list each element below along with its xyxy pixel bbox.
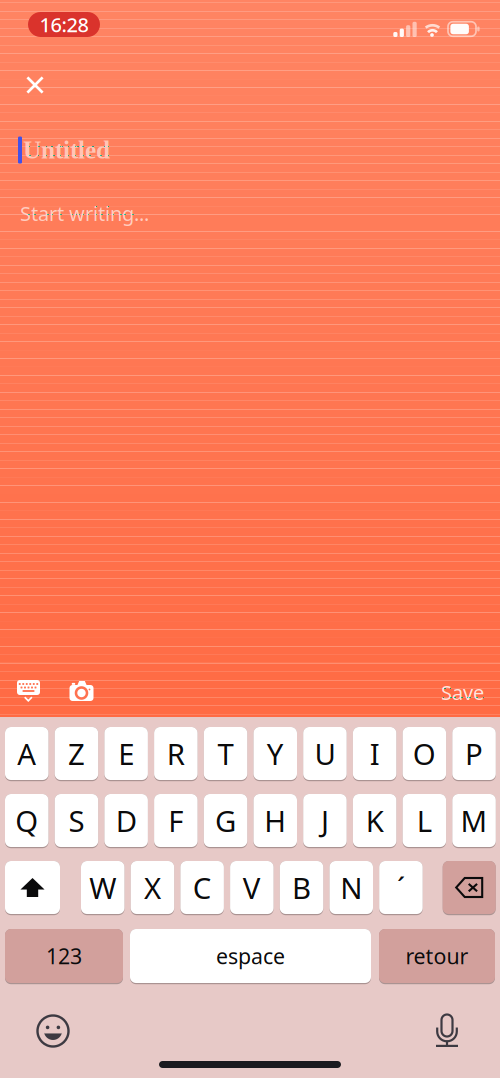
staticText: S [68,801,84,840]
button[interactable]: E [104,727,148,780]
staticText: M [460,801,487,840]
button[interactable]: G [204,794,247,847]
button[interactable]: Close [14,64,56,106]
button[interactable]: F [154,794,198,847]
button[interactable]: R [154,727,198,780]
staticText: F [168,801,183,840]
staticText: Z [68,734,85,773]
button[interactable]: L [403,794,446,847]
staticText: G [215,801,236,840]
staticText: Start writing... [20,200,149,227]
staticText: Q [15,801,38,840]
button[interactable]: Save [427,665,498,720]
staticText: Y [267,734,284,773]
button[interactable]: J [303,794,347,847]
staticText: B [292,868,311,907]
staticText: C [193,868,212,907]
button[interactable]: M [452,794,496,847]
button[interactable]: ´ [379,861,423,914]
button[interactable]: I [353,727,396,780]
button[interactable]: Emoji [23,1001,83,1061]
button[interactable]: N [329,861,373,914]
staticText: A [17,734,36,773]
button[interactable]: A [5,727,48,780]
button[interactable]: retour [379,929,495,983]
button[interactable]: H [253,794,297,847]
button[interactable]: U [303,727,347,780]
staticText: Save [441,679,484,706]
staticText: Untitled [23,136,110,164]
button[interactable]: O [403,727,446,780]
staticText: R [167,734,185,773]
staticText: ´ [397,868,405,907]
button[interactable]: Shift [5,861,60,914]
staticText: L [417,801,432,840]
button[interactable]: C [180,861,224,914]
staticText: D [116,801,137,840]
staticText: N [340,868,362,907]
button[interactable]: T [204,727,247,780]
button[interactable]: K [353,794,396,847]
staticText: espace [216,942,285,970]
button[interactable]: D [104,794,148,847]
staticText: J [321,801,329,840]
staticText: retour [405,942,468,970]
button[interactable]: P [452,727,496,780]
button[interactable]: Y [253,727,297,780]
button[interactable]: Insert photo [55,665,108,718]
button[interactable]: B [280,861,323,914]
staticText: W [89,868,116,907]
button[interactable]: W [81,861,124,914]
button[interactable]: Z [55,727,98,780]
button[interactable]: espace [130,929,371,983]
staticText: T [218,734,234,773]
staticText: 123 [46,942,82,970]
button[interactable]: Delete [443,861,496,914]
button[interactable]: S [55,794,98,847]
staticText: V [243,868,261,907]
staticText: K [366,801,384,840]
staticText: E [118,734,134,773]
staticText: U [314,734,335,773]
button[interactable]: X [131,861,174,914]
button[interactable]: Dictate [422,995,472,1056]
button[interactable]: Q [5,794,48,847]
staticText: P [465,734,483,773]
staticText: X [144,868,161,907]
staticText: O [413,734,436,773]
button[interactable]: Hide keyboard [3,665,54,717]
button[interactable]: V [230,861,274,914]
staticText: I [370,734,380,773]
button[interactable]: 123 [5,929,123,983]
staticText: H [264,801,286,840]
staticText: 16:28 [39,11,88,38]
